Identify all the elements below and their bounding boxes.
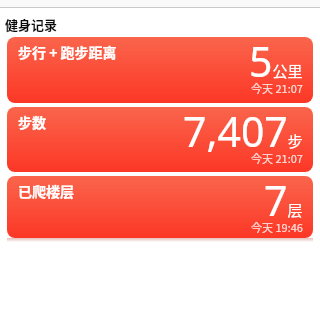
staticText: 步数 (18, 112, 46, 132)
staticText: 今天 21:07 (251, 150, 303, 166)
staticText: 今天 19:46 (251, 219, 303, 235)
staticText: 已爬楼层 (18, 181, 74, 201)
button[interactable]: 步行 + 跑步距离 (7, 37, 313, 103)
button[interactable]: 步数 (7, 107, 313, 172)
staticText: 5公里 (249, 37, 303, 89)
staticText: 7,407步 (183, 107, 303, 159)
button[interactable]: 已爬楼层 (7, 176, 313, 238)
staticText: 今天 21:07 (251, 80, 303, 96)
staticText: 7层 (264, 176, 303, 228)
staticText: 步行 + 跑步距离 (18, 42, 117, 62)
staticText: 健身记录 (5, 15, 58, 34)
